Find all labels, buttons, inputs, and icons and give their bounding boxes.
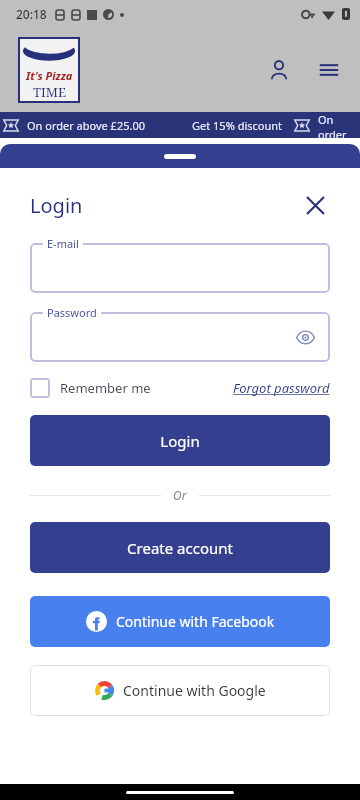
- button[interactable]: Drag handle: [0, 144, 360, 168]
- staticText: Login: [160, 431, 200, 451]
- button[interactable]: Forgot password: [233, 379, 330, 397]
- staticText: It's Pizza: [26, 68, 73, 83]
- staticText: Password: [47, 305, 97, 320]
- button[interactable]: Menu: [314, 55, 344, 85]
- button[interactable]: Show password: [292, 324, 318, 350]
- button[interactable]: Account: [264, 55, 294, 85]
- staticText: Continue with Google: [123, 681, 266, 700]
- staticText: TIME: [33, 83, 67, 101]
- staticText: On order above £25.00: [27, 118, 146, 133]
- staticText: Get 15% discount: [192, 118, 283, 133]
- button[interactable]: Remember me: [30, 378, 151, 398]
- button[interactable]: It's Pizza Time logo: [18, 37, 80, 103]
- button[interactable]: Create account: [30, 522, 330, 573]
- staticText: Forgot password: [233, 379, 330, 397]
- staticText: E-mail: [47, 236, 79, 251]
- staticText: On order abo: [318, 112, 360, 138]
- button[interactable]: Continue with Google: [30, 665, 330, 716]
- button[interactable]: Login: [30, 415, 330, 466]
- staticText: Remember me: [60, 379, 151, 397]
- staticText: Continue with Facebook: [116, 612, 275, 631]
- button[interactable]: Continue with Facebook: [30, 596, 330, 647]
- button[interactable]: Close: [300, 190, 330, 220]
- staticText: Or: [173, 487, 187, 503]
- staticText: 20:18: [16, 6, 47, 22]
- staticText: Create account: [127, 538, 233, 558]
- button[interactable]: [30, 312, 330, 362]
- staticText: Login: [30, 192, 83, 219]
- button[interactable]: [30, 243, 330, 293]
